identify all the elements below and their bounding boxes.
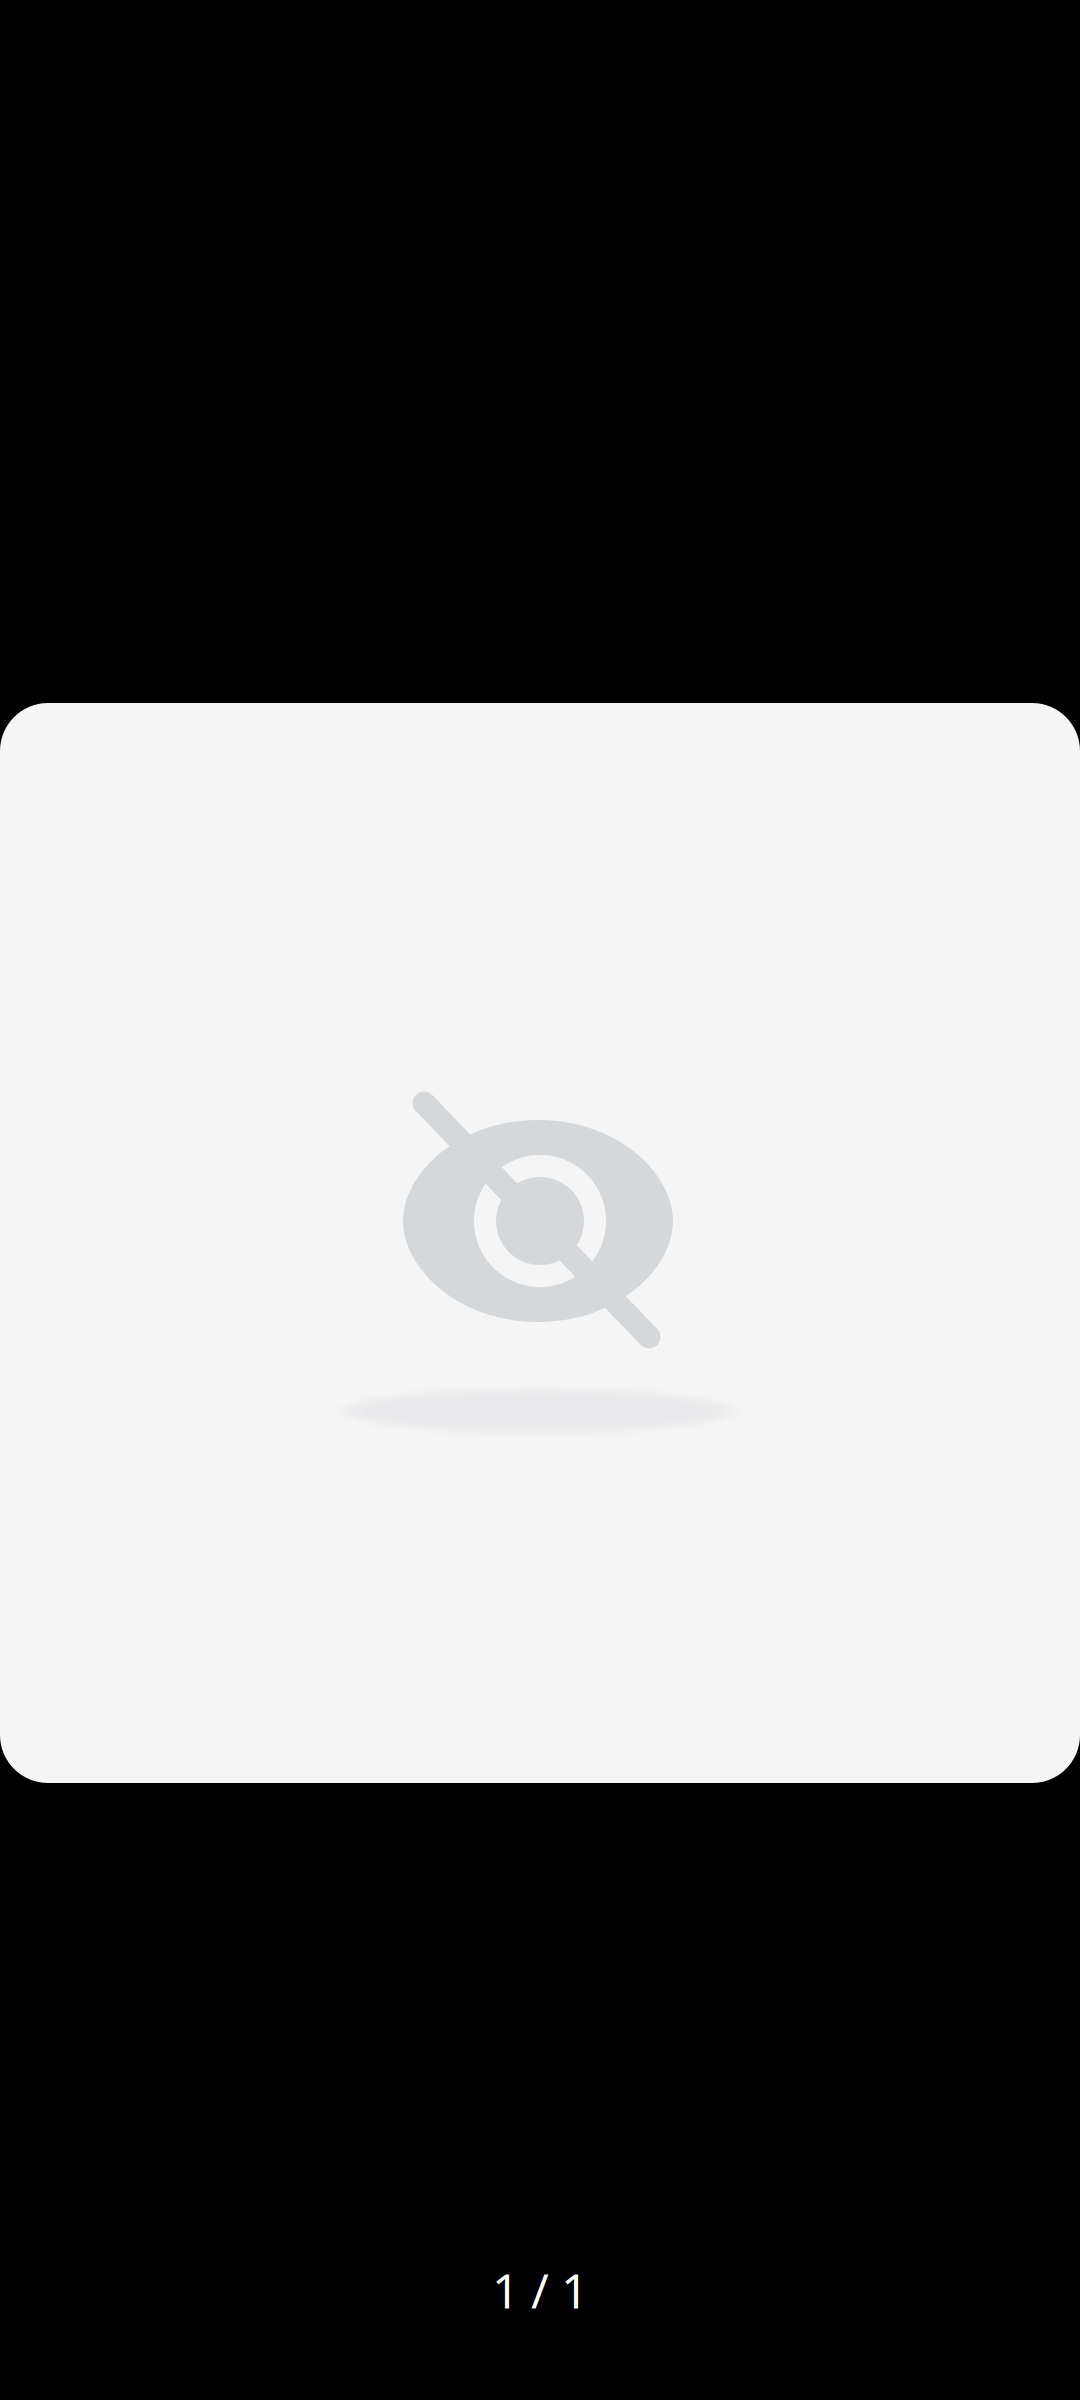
button[interactable]: Photo unavailable	[0, 703, 1080, 1783]
staticText: 1 / 1	[492, 2258, 588, 2322]
